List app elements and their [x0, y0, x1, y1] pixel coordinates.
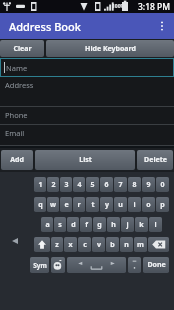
staticText: 9 [146, 180, 151, 190]
button[interactable]: x [64, 237, 77, 252]
staticText: a [45, 220, 50, 230]
staticText: Sym [33, 261, 47, 270]
button[interactable]: o [142, 197, 155, 212]
button[interactable]: t [86, 197, 99, 212]
button[interactable]: m [134, 237, 147, 252]
button[interactable]: c [78, 237, 91, 252]
button[interactable]: List [35, 150, 135, 170]
staticText: b [110, 240, 115, 250]
staticText: x [68, 240, 73, 250]
button[interactable]: Hide Keyboard [46, 40, 174, 57]
button[interactable]: 2 [47, 177, 59, 192]
staticText: p [160, 200, 165, 210]
button[interactable]: 3 [60, 177, 72, 192]
button[interactable]: k [135, 217, 148, 232]
staticText: u [118, 200, 123, 210]
button[interactable]: Add [1, 150, 33, 170]
button[interactable]: j [121, 217, 134, 232]
button[interactable]: Previous [9, 235, 21, 247]
staticText: t [91, 200, 95, 210]
button[interactable]: Voice input [51, 257, 65, 273]
button[interactable]: 4 [73, 177, 85, 192]
staticText: Phone [5, 110, 28, 120]
staticText: y [105, 200, 109, 210]
staticText: 5 [90, 180, 95, 190]
button[interactable]: Address [0, 77, 174, 107]
button[interactable]: 5 [86, 177, 99, 192]
staticText: 3:18 PM [138, 1, 171, 13]
staticText: Clear [13, 44, 32, 54]
staticText: Add [10, 155, 24, 165]
button[interactable]: 8 [128, 177, 141, 192]
button[interactable]: w [47, 197, 59, 212]
button[interactable]: n [120, 237, 133, 252]
button[interactable]: d [67, 217, 79, 232]
button[interactable]: v [92, 237, 105, 252]
button[interactable]: Comma period [128, 257, 141, 273]
staticText: 100% [112, 3, 126, 10]
staticText: w [50, 200, 56, 210]
staticText: e [64, 200, 69, 210]
staticText: Done [147, 260, 166, 270]
button[interactable]: l [149, 217, 162, 232]
staticText: 3 [64, 180, 69, 190]
button[interactable]: i [128, 197, 141, 212]
staticText: n [124, 240, 129, 250]
button[interactable]: 9 [142, 177, 155, 192]
staticText: Delete [144, 155, 167, 165]
staticText: j [126, 220, 129, 230]
button[interactable]: Shift [34, 237, 50, 252]
button[interactable]: Clear [0, 40, 44, 57]
staticText: 6 [104, 180, 109, 190]
button[interactable]: f [80, 217, 92, 232]
button[interactable]: Name [0, 58, 174, 77]
button[interactable]: Backspace [148, 237, 169, 252]
staticText: z [55, 240, 59, 250]
staticText: i [133, 200, 136, 210]
button[interactable]: s [54, 217, 66, 232]
staticText: 7 [118, 180, 123, 190]
button[interactable]: u [114, 197, 127, 212]
button[interactable]: Space [67, 257, 126, 273]
button[interactable]: Email [0, 125, 174, 146]
button[interactable]: g [93, 217, 106, 232]
staticText: l [154, 220, 157, 230]
button[interactable]: More options [150, 14, 174, 38]
staticText: 4 [77, 180, 82, 190]
button[interactable]: a [41, 217, 53, 232]
button[interactable]: r [73, 197, 85, 212]
staticText: 0 [160, 180, 165, 190]
staticText: 2 [51, 180, 56, 190]
staticText: Email [5, 128, 25, 138]
staticText: d [71, 220, 76, 230]
button[interactable]: 7 [114, 177, 127, 192]
staticText: c [83, 240, 87, 250]
button[interactable]: p [156, 197, 169, 212]
button[interactable]: Delete [137, 150, 173, 170]
staticText: Name [6, 63, 28, 73]
button[interactable]: h [107, 217, 120, 232]
staticText: h [111, 220, 116, 230]
staticText: f [85, 220, 88, 230]
staticText: 1 [38, 180, 43, 190]
staticText: Address [5, 80, 34, 90]
button[interactable]: q [34, 197, 46, 212]
staticText: v [97, 240, 101, 250]
staticText: Address Book [9, 19, 81, 34]
button[interactable]: 1 [34, 177, 46, 192]
staticText: q [38, 200, 43, 210]
staticText: List [79, 155, 92, 165]
button[interactable]: Sym [30, 257, 49, 273]
button[interactable]: Done [143, 257, 169, 273]
button[interactable]: 0 [156, 177, 169, 192]
button[interactable]: Phone [0, 107, 174, 125]
button[interactable]: b [106, 237, 119, 252]
button[interactable]: z [51, 237, 63, 252]
staticText: k [139, 220, 144, 230]
staticText: Hide Keyboard [85, 44, 136, 54]
button[interactable]: y [100, 197, 113, 212]
button[interactable]: e [60, 197, 72, 212]
staticText: o [146, 200, 151, 210]
staticText: m [137, 240, 144, 250]
button[interactable]: 6 [100, 177, 113, 192]
